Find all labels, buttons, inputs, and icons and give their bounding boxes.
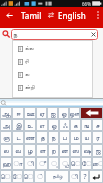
button[interactable]: ஃ — [59, 119, 70, 131]
button[interactable]: ெ — [70, 157, 81, 170]
button[interactable]: ா — [12, 157, 24, 170]
button[interactable]: Enter — [89, 170, 103, 183]
staticText: ந — [51, 134, 56, 141]
staticText: ஹ — [2, 160, 11, 167]
button[interactable]: ண — [24, 131, 36, 144]
button[interactable]: ே — [81, 157, 92, 170]
staticText: ஐ — [50, 110, 56, 117]
button[interactable]: English — [58, 10, 86, 21]
staticText: ஞ — [3, 134, 10, 141]
button[interactable]: உ — [24, 119, 36, 131]
button[interactable]: Backspace — [80, 107, 103, 119]
staticText: இ — [15, 122, 22, 129]
button[interactable]: ன்றி — [12, 81, 93, 94]
button[interactable]: ஞ — [0, 131, 12, 144]
button[interactable]: ோ — [12, 170, 23, 183]
button[interactable]: ீ — [36, 157, 48, 170]
staticText: ல — [25, 72, 30, 78]
button[interactable]: ப — [59, 131, 70, 144]
button[interactable]: ன — [59, 144, 70, 157]
staticText: ி — [27, 160, 34, 167]
button[interactable]: ட — [12, 131, 24, 144]
staticText: ே — [81, 160, 92, 167]
button[interactable]: எ — [36, 119, 48, 131]
staticText: ஔ — [69, 110, 80, 117]
button[interactable]: ல — [0, 144, 12, 157]
staticText: ி — [71, 173, 78, 180]
staticText: ன்றி — [25, 85, 35, 91]
staticText: 66% — [82, 1, 91, 7]
button[interactable]: ? — [80, 170, 89, 183]
button[interactable]: ல — [12, 68, 93, 81]
staticText: ய — [84, 134, 89, 141]
button[interactable]: ஸ — [70, 144, 81, 157]
button[interactable]: ரி — [12, 55, 93, 68]
button[interactable]: Back — [0, 7, 18, 23]
button[interactable]: ூ — [59, 157, 70, 170]
button[interactable]: ் — [34, 170, 45, 183]
staticText: ச — [95, 122, 100, 129]
other: Enter — [92, 173, 100, 181]
button[interactable]: ு — [48, 157, 59, 170]
button[interactable]: த — [36, 131, 48, 144]
staticText: ஆ — [1, 110, 11, 117]
button[interactable]: ஹ — [0, 157, 12, 170]
button[interactable]: ஐ — [47, 107, 58, 119]
button[interactable]: க — [70, 119, 81, 131]
staticText: ு — [51, 160, 57, 167]
staticText: ் — [37, 173, 43, 180]
staticText: ீ — [39, 160, 45, 167]
button[interactable]: ழ — [24, 144, 36, 157]
button[interactable]: இ — [12, 119, 24, 131]
button[interactable]: ஆ — [0, 107, 12, 119]
button[interactable]: ஊ — [24, 107, 36, 119]
button[interactable]: ள — [36, 144, 48, 157]
button[interactable]: ை — [92, 157, 103, 170]
button[interactable]: ற — [48, 144, 59, 157]
button[interactable]: ஏ — [36, 107, 47, 119]
staticText: ஏ — [39, 110, 45, 117]
button[interactable]: ி — [69, 170, 80, 183]
button[interactable]: More options — [92, 7, 103, 23]
staticText: அ — [2, 122, 10, 129]
staticText: த — [40, 134, 45, 141]
button[interactable]: ஒ — [48, 119, 59, 131]
staticText: ற — [51, 147, 56, 154]
staticText: ட — [16, 134, 21, 141]
staticText: ஈ — [16, 110, 21, 117]
button[interactable]: அ — [0, 119, 12, 131]
button[interactable]: ம — [70, 131, 81, 144]
button[interactable]: ஷ — [81, 144, 92, 157]
button[interactable]: Tamil — [21, 10, 42, 21]
button[interactable]: ி — [24, 157, 36, 170]
button[interactable]: ர — [92, 131, 103, 144]
button[interactable]: ல்ல — [12, 42, 93, 55]
staticText: ப — [62, 134, 67, 141]
button[interactable]: ய — [81, 131, 92, 144]
button[interactable]: வ — [12, 144, 24, 157]
staticText: ர — [96, 134, 100, 141]
button[interactable]: ந — [48, 131, 59, 144]
staticText: ண — [25, 134, 35, 141]
staticText: ொ — [0, 173, 12, 180]
button[interactable]: ங — [81, 119, 92, 131]
button[interactable]: ொ — [0, 170, 12, 183]
staticText: ஓ — [61, 110, 67, 117]
staticText: ஊ — [26, 110, 35, 117]
staticText: ம — [73, 134, 79, 141]
staticText: ? — [83, 172, 87, 182]
button[interactable]: தமிழ் — [45, 170, 69, 183]
button[interactable]: Swap languages — [47, 7, 55, 23]
staticText: ை — [92, 160, 103, 167]
staticText: ங — [84, 122, 89, 129]
button[interactable]: ந — [11, 29, 98, 40]
button[interactable]: ஔ — [69, 107, 80, 119]
staticText: ரி — [25, 59, 29, 65]
button[interactable]: ஓ — [58, 107, 69, 119]
button[interactable]: ஜ — [92, 144, 103, 157]
staticText: ஒ — [51, 122, 57, 129]
button[interactable]: ஈ — [12, 107, 24, 119]
button[interactable]: Search — [0, 28, 11, 40]
button[interactable]: ௌ — [23, 170, 34, 183]
button[interactable]: ச — [92, 119, 103, 131]
